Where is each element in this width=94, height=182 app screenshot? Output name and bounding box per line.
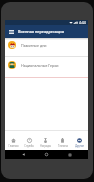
button[interactable]: Главная xyxy=(5,130,21,150)
button[interactable]: Menu xyxy=(7,27,16,36)
staticText: Другое xyxy=(75,144,84,147)
staticText: Награды xyxy=(40,144,51,147)
staticText: Служба xyxy=(24,144,34,147)
staticText: Военная переадресация xyxy=(18,29,64,34)
button[interactable]: Recents xyxy=(65,150,74,159)
button[interactable]: Национальные Герои xyxy=(5,57,88,77)
staticText: Памятные дни xyxy=(21,43,47,48)
staticText: Техника xyxy=(58,144,68,147)
button[interactable]: Back xyxy=(19,150,28,159)
button[interactable]: Home xyxy=(42,150,51,159)
button[interactable]: Техника xyxy=(54,130,71,150)
button[interactable]: Награды xyxy=(37,130,54,150)
staticText: Главная xyxy=(8,144,19,147)
button[interactable]: Памятные дни xyxy=(5,38,88,56)
button[interactable]: Служба xyxy=(21,130,37,150)
staticText: 4:44 xyxy=(79,20,86,25)
staticText: Национальные Герои xyxy=(21,63,59,68)
button[interactable]: Другое xyxy=(71,130,88,150)
